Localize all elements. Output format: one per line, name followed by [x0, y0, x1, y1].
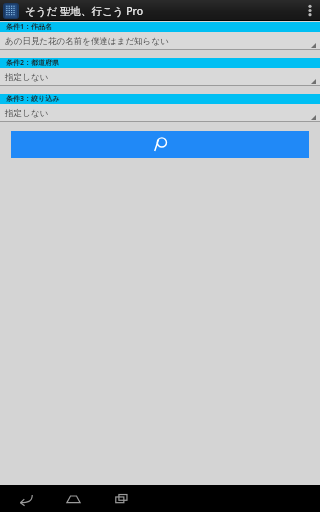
- button[interactable]: More options: [300, 0, 320, 21]
- staticText: 指定しない: [5, 72, 49, 83]
- staticText: 条件2：都道府県: [6, 58, 60, 68]
- other: App icon: [3, 3, 19, 19]
- staticText: あの日見た花の名前を僕達はまだ知らない: [5, 36, 169, 47]
- staticText: 指定しない: [5, 108, 49, 119]
- staticText: 条件1：作品名: [6, 22, 53, 32]
- button[interactable]: 指定しない: [0, 68, 320, 86]
- button[interactable]: あの日見た花の名前を僕達はまだ知らない: [0, 32, 320, 50]
- button[interactable]: Home: [58, 485, 88, 512]
- button[interactable]: Back: [10, 485, 40, 512]
- button[interactable]: Search: [11, 131, 309, 158]
- button[interactable]: 指定しない: [0, 104, 320, 122]
- button[interactable]: Recent apps: [106, 485, 136, 512]
- staticText: そうだ 聖地、行こう Pro: [25, 4, 144, 18]
- staticText: 条件3：絞り込み: [6, 94, 60, 104]
